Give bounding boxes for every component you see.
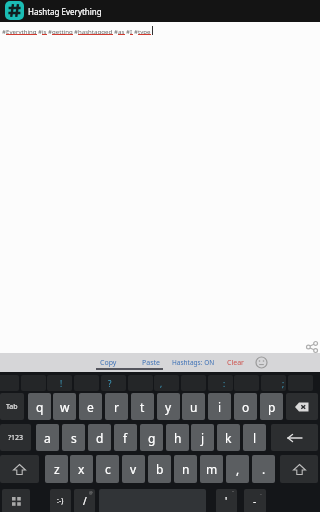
button[interactable]: ?123: [0, 424, 31, 451]
staticText: getting: [52, 27, 73, 35]
button[interactable]: g: [140, 424, 163, 451]
button[interactable]: [101, 375, 126, 391]
button[interactable]: /: [74, 489, 95, 512]
button[interactable]: Copy: [78, 353, 138, 372]
staticText: #: [2, 27, 6, 35]
staticText: z: [54, 461, 60, 477]
button[interactable]: n: [174, 455, 197, 483]
staticText: v: [130, 461, 137, 477]
staticText: t: [140, 399, 145, 415]
button[interactable]: Paste: [121, 353, 181, 372]
button[interactable]: i: [208, 393, 231, 420]
button[interactable]: [47, 375, 72, 391]
button[interactable]: [5, 1, 24, 20]
button[interactable]: p: [260, 393, 283, 420]
button[interactable]: [261, 375, 286, 391]
button[interactable]: b: [148, 455, 171, 483]
staticText: Hashtag Everything: [28, 6, 102, 17]
button[interactable]: m: [200, 455, 223, 483]
button[interactable]: .: [252, 455, 275, 483]
staticText: d: [96, 430, 104, 446]
staticText: _: [260, 490, 262, 495]
button[interactable]: k: [217, 424, 240, 451]
staticText: n: [182, 461, 190, 477]
staticText: #: [114, 27, 118, 35]
staticText: q: [36, 399, 44, 415]
button[interactable]: a: [36, 424, 59, 451]
staticText: h: [174, 430, 182, 446]
staticText: Hashtags: ON: [172, 358, 215, 367]
staticText: ': [225, 494, 228, 508]
button[interactable]: x: [70, 455, 93, 483]
button[interactable]: j: [191, 424, 214, 451]
button[interactable]: h: [166, 424, 189, 451]
staticText: type: [138, 27, 151, 35]
button[interactable]: r: [105, 393, 128, 420]
staticText: i: [218, 399, 222, 415]
staticText: u: [190, 399, 198, 415]
button[interactable]: Tab: [0, 393, 24, 420]
staticText: #: [74, 27, 78, 35]
staticText: x: [78, 461, 85, 477]
button[interactable]: Hashtags: ON: [163, 353, 223, 372]
button[interactable]: ,: [226, 455, 249, 483]
button[interactable]: [208, 375, 233, 391]
button[interactable]: [2, 489, 30, 512]
staticText: ,: [236, 461, 240, 477]
staticText: a: [44, 430, 51, 446]
button[interactable]: q: [28, 393, 51, 420]
staticText: ": [232, 490, 234, 495]
button[interactable]: s: [62, 424, 85, 451]
staticText: ,: [160, 378, 163, 389]
staticText: Tab: [6, 402, 18, 412]
button[interactable]: o: [234, 393, 257, 420]
staticText: /: [83, 494, 87, 508]
button[interactable]: l: [243, 424, 266, 451]
button[interactable]: [0, 455, 39, 483]
staticText: Clear: [227, 358, 244, 368]
staticText: e: [87, 399, 94, 415]
staticText: #: [38, 27, 42, 35]
staticText: is: [42, 27, 47, 35]
staticText: b: [156, 461, 164, 477]
staticText: #: [134, 27, 138, 35]
button[interactable]: z: [45, 455, 68, 483]
button[interactable]: v: [122, 455, 145, 483]
button[interactable]: t: [131, 393, 154, 420]
button[interactable]: [286, 393, 318, 420]
staticText: o: [242, 399, 250, 415]
staticText: Paste: [142, 358, 160, 368]
staticText: :: [223, 378, 226, 389]
button[interactable]: :-): [50, 489, 71, 512]
button[interactable]: [255, 356, 268, 369]
button[interactable]: u: [182, 393, 205, 420]
button[interactable]: Clear: [205, 353, 265, 372]
button[interactable]: [306, 341, 318, 353]
button[interactable]: c: [96, 455, 119, 483]
button[interactable]: y: [157, 393, 180, 420]
button[interactable]: ': [216, 489, 237, 512]
button[interactable]: [271, 424, 318, 451]
staticText: !: [60, 378, 63, 389]
button[interactable]: [280, 455, 318, 483]
button[interactable]: d: [88, 424, 111, 451]
button[interactable]: f: [114, 424, 137, 451]
button[interactable]: w: [53, 393, 76, 420]
staticText: w: [60, 399, 70, 415]
staticText: .: [262, 461, 266, 477]
button[interactable]: [154, 375, 179, 391]
button[interactable]: -: [244, 489, 266, 512]
staticText: k: [225, 430, 232, 446]
button[interactable]: e: [79, 393, 102, 420]
staticText: :-): [57, 496, 64, 506]
staticText: #: [126, 27, 130, 35]
staticText: -: [253, 494, 257, 508]
